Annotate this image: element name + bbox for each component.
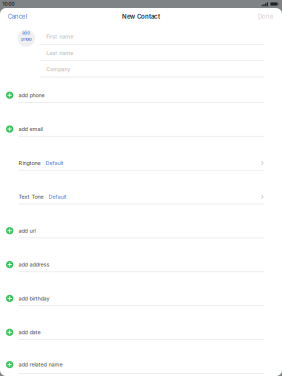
button[interactable]: add address [0, 252, 282, 278]
staticText: add address [18, 261, 49, 268]
staticText: add [22, 31, 30, 35]
staticText: add phone [18, 92, 44, 98]
staticText: Company [46, 66, 70, 72]
button[interactable]: Text Tone [0, 184, 282, 210]
staticText: Ringtone [18, 160, 40, 166]
button[interactable]: add phone [0, 82, 282, 108]
staticText: 10:00 [3, 1, 15, 7]
staticText: Text Tone [18, 193, 43, 200]
button[interactable]: Done [249, 9, 282, 24]
staticText: Cancel [8, 13, 27, 20]
staticText: First name [46, 33, 73, 40]
staticText: add related name [18, 361, 62, 368]
staticText: add birthday [18, 295, 49, 302]
staticText: add email [18, 126, 42, 132]
staticText: photo [21, 37, 31, 42]
staticText: add url [18, 227, 35, 234]
button[interactable]: add related name [0, 352, 282, 376]
staticText: Last name [46, 50, 73, 56]
button[interactable]: Cancel [0, 9, 35, 24]
button[interactable]: add date [0, 319, 282, 345]
button[interactable]: Ringtone [0, 150, 282, 176]
staticText: Default [46, 160, 64, 166]
button[interactable]: add birthday [0, 285, 282, 311]
staticText: add date [18, 329, 40, 336]
button[interactable]: add email [0, 116, 282, 142]
staticText: Default [49, 193, 67, 200]
staticText: New Contact [122, 13, 160, 20]
button[interactable]: Add photo [18, 29, 35, 47]
button[interactable]: add url [0, 218, 282, 244]
staticText: Done [258, 13, 274, 20]
